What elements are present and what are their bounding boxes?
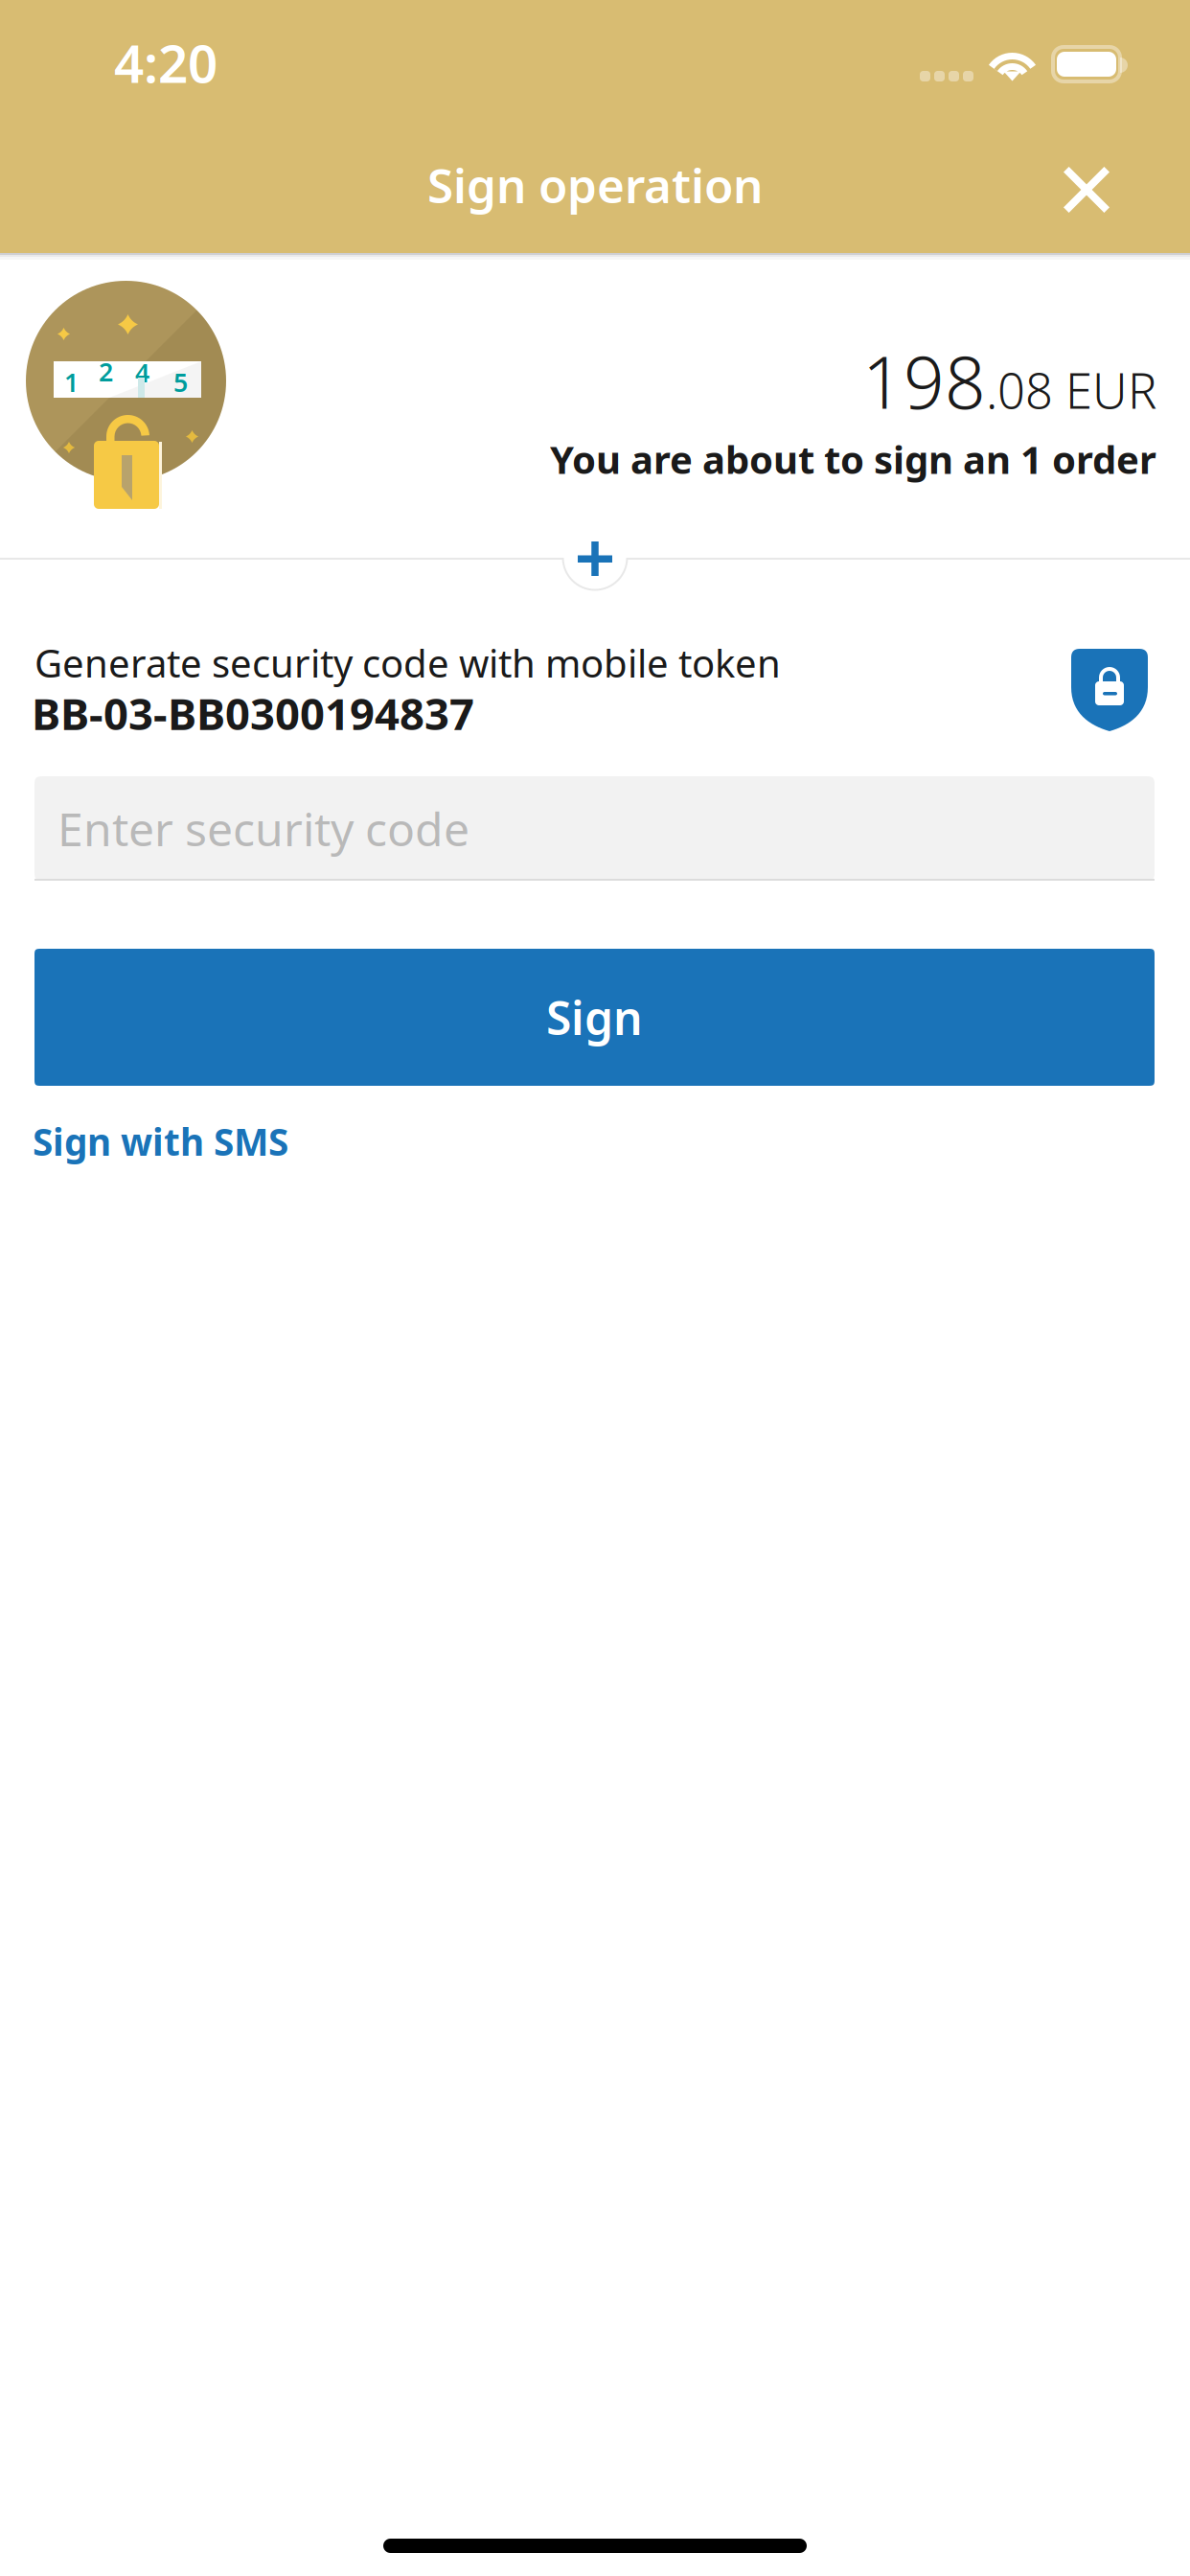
button[interactable]: Enter security code <box>34 776 1155 881</box>
staticText: Sign with SMS <box>33 1117 288 1166</box>
staticText: .08 EUR <box>986 358 1156 422</box>
staticText: Sign <box>546 987 643 1048</box>
staticText: 4:20 <box>114 28 217 97</box>
button[interactable]: Sign with SMS <box>33 1103 435 1180</box>
staticText: 1 <box>64 365 79 399</box>
staticText: 198 <box>862 333 986 428</box>
staticText: Enter security code <box>57 798 469 859</box>
staticText: 5 <box>173 365 188 399</box>
staticText: BB-03-BB0300194837 <box>32 684 474 742</box>
staticText: 4 <box>135 356 149 389</box>
button[interactable]: Sign <box>34 949 1155 1086</box>
staticText: 2 <box>99 355 113 389</box>
button[interactable]: Show order details <box>552 516 638 602</box>
staticText: Generate security code with mobile token <box>34 637 781 688</box>
staticText: You are about to sign an 1 order <box>550 434 1156 484</box>
staticText: Sign operation <box>427 153 763 216</box>
button[interactable]: Close <box>1039 142 1134 238</box>
